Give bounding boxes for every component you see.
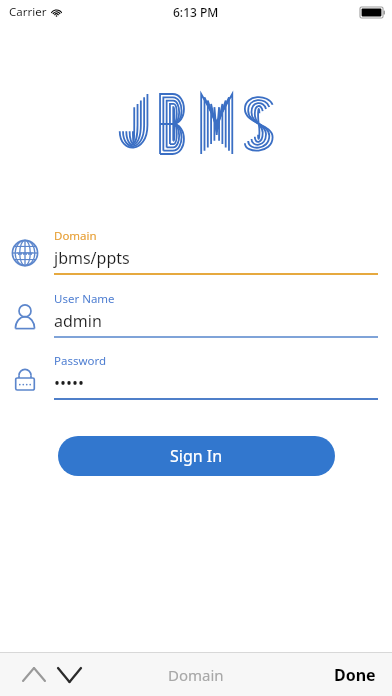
button[interactable]: Password (8, 361, 42, 395)
staticText: ••••• (54, 372, 85, 394)
staticText: Carrier (9, 4, 47, 20)
staticText: Domain (168, 665, 224, 685)
button[interactable]: Domain (54, 226, 378, 275)
button[interactable]: Domain (8, 236, 42, 270)
staticText: Done (334, 664, 376, 686)
button[interactable]: Sign In (58, 436, 335, 476)
staticText: admin (54, 310, 102, 332)
button[interactable]: Password (54, 351, 378, 400)
staticText: www (17, 249, 33, 257)
button[interactable]: Done (328, 656, 382, 694)
staticText: User Name (54, 291, 115, 307)
staticText: Sign In (170, 445, 223, 467)
staticText: jbms/ppts (54, 247, 130, 269)
button[interactable]: User name (8, 299, 42, 333)
button[interactable]: User Name (54, 289, 378, 338)
staticText: Password (54, 353, 107, 369)
staticText: 6:13 PM (173, 4, 219, 20)
staticText: Domain (54, 228, 97, 244)
button[interactable]: Next field (48, 653, 90, 696)
button[interactable]: Previous field (14, 653, 54, 696)
